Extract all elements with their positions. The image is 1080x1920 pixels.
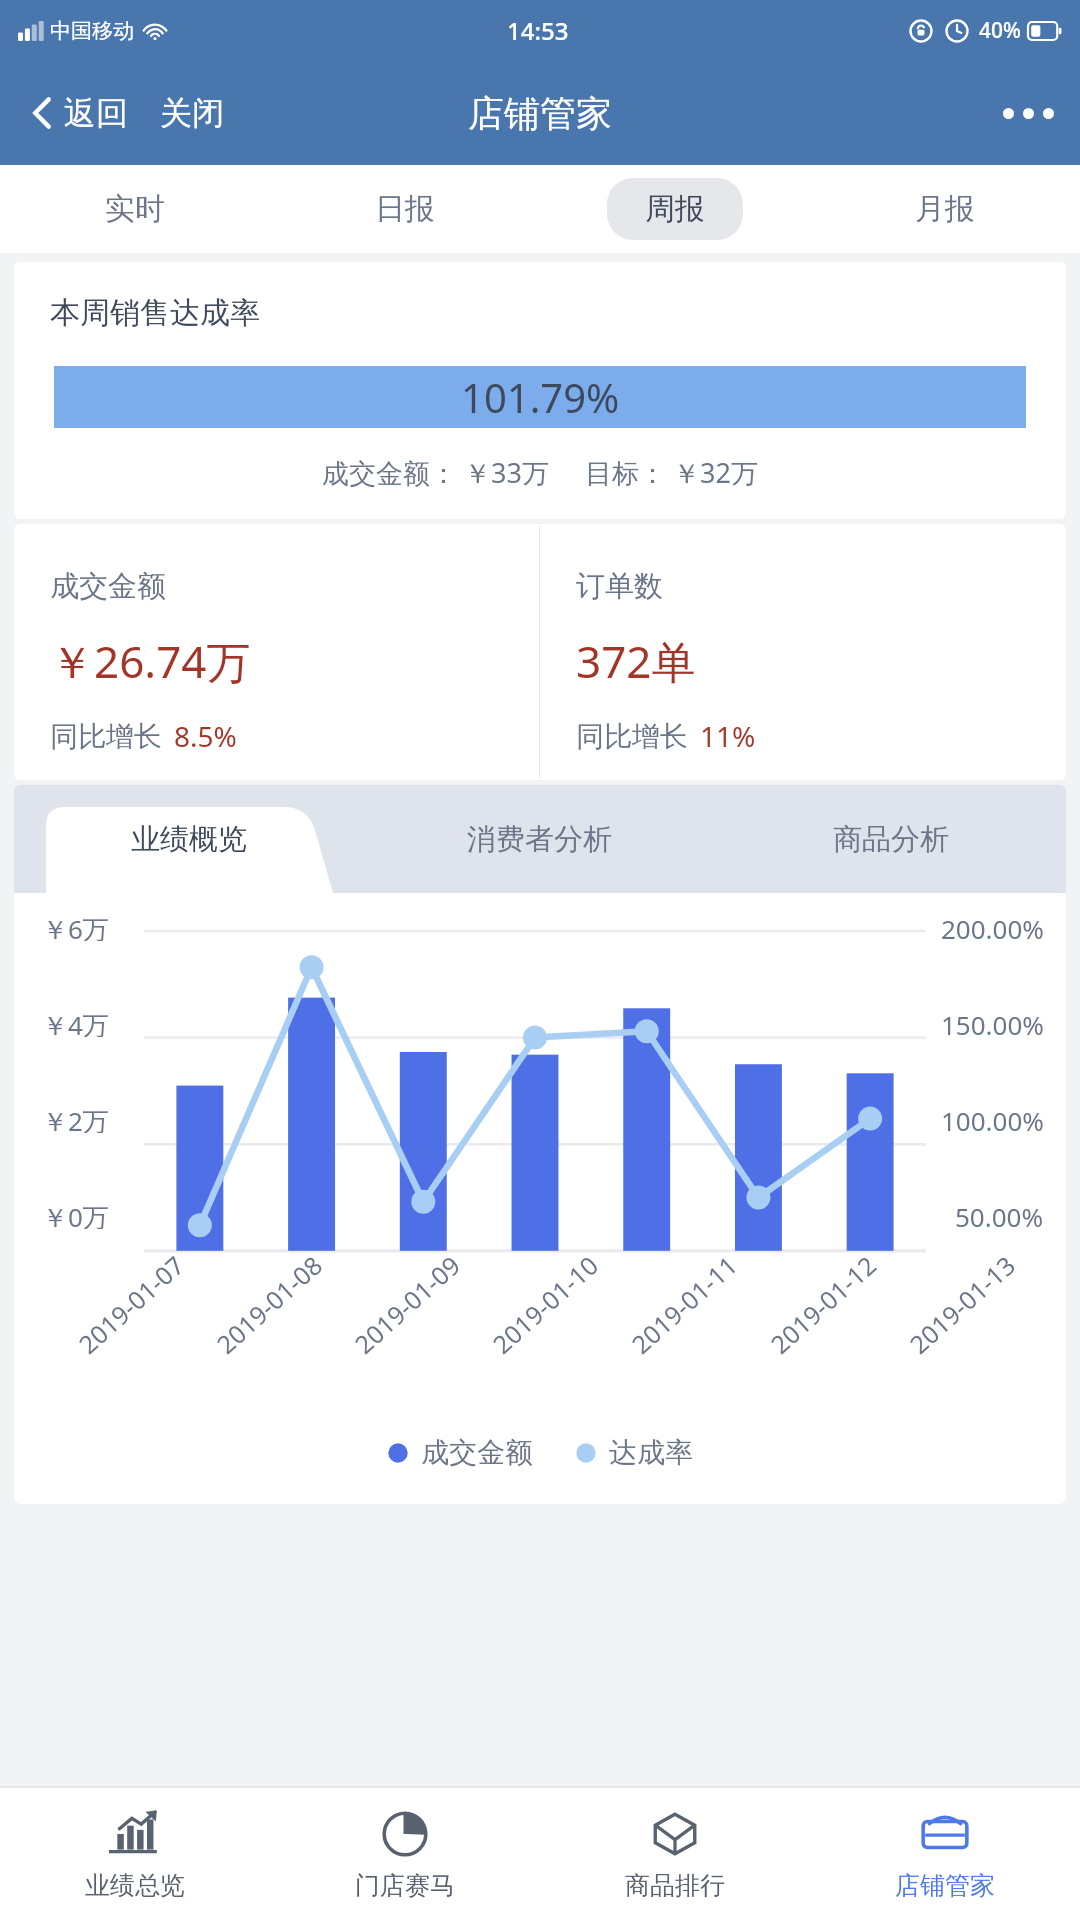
staticText: 8.5% [174, 717, 237, 755]
staticText: 业绩总览 [85, 1870, 185, 1901]
staticText: 2019-01-08 [209, 1248, 329, 1361]
staticText: 2019-01-09 [347, 1248, 467, 1361]
staticText: 关闭 [160, 93, 224, 133]
staticText: 目标： ￥32万 [585, 454, 758, 491]
staticText: 门店赛马 [355, 1870, 455, 1901]
button[interactable]: 月报 [810, 165, 1080, 253]
staticText: 成交金额： ￥33万 [322, 454, 549, 491]
button[interactable]: 关闭 [154, 83, 230, 143]
button[interactable]: 周报 [540, 165, 810, 253]
staticText: 150.00% [941, 1007, 1044, 1037]
staticText: ￥4万 [42, 1007, 109, 1037]
button[interactable]: 日报 [270, 165, 540, 253]
staticText: ￥0万 [42, 1199, 109, 1229]
staticText: 业绩概览 [131, 821, 247, 858]
button[interactable]: 门店赛马 [270, 1788, 540, 1920]
staticText: 商品分析 [833, 821, 949, 858]
staticText: 同比增长 [576, 719, 688, 754]
button[interactable]: 业绩概览 [14, 785, 364, 893]
button[interactable]: 商品分析 [715, 785, 1066, 893]
button[interactable]: More options [977, 84, 1080, 143]
staticText: 消费者分析 [467, 821, 612, 858]
staticText: ￥6万 [42, 911, 109, 941]
staticText: ￥2万 [42, 1103, 109, 1133]
staticText: 同比增长 [50, 719, 162, 754]
button[interactable]: 实时 [0, 165, 270, 253]
staticText: 2019-01-07 [71, 1248, 191, 1361]
staticText: 店铺管家 [895, 1870, 995, 1901]
staticText: 成交金额 [421, 1435, 533, 1470]
staticText: 100.00% [941, 1103, 1044, 1133]
staticText: 40% [979, 16, 1021, 45]
staticText: 11% [700, 717, 756, 755]
staticText: 月报 [915, 190, 975, 228]
button[interactable]: 业绩总览 [0, 1788, 270, 1920]
staticText: 2019-01-11 [624, 1248, 744, 1361]
button[interactable]: 店铺管家 [810, 1788, 1080, 1920]
staticText: 200.00% [941, 911, 1044, 941]
staticText: 店铺管家 [468, 91, 612, 136]
button[interactable]: 成交金额 [14, 524, 539, 780]
staticText: 101.79% [461, 370, 620, 424]
staticText: 372单 [576, 631, 696, 691]
staticText: 14:53 [507, 14, 569, 47]
button[interactable]: 返回 [26, 83, 132, 143]
button[interactable]: 订单数 [540, 524, 1066, 780]
staticText: 2019-01-12 [763, 1248, 883, 1361]
staticText: 2019-01-13 [902, 1248, 1022, 1361]
staticText: 商品排行 [625, 1870, 725, 1901]
staticText: 返回 [64, 93, 128, 133]
staticText: 周报 [645, 190, 705, 228]
staticText: 本周销售达成率 [50, 294, 260, 332]
button[interactable]: 消费者分析 [364, 785, 715, 893]
staticText: 实时 [105, 190, 165, 228]
staticText: 日报 [375, 190, 435, 228]
staticText: 2019-01-10 [485, 1248, 605, 1361]
staticText: 中国移动 [50, 18, 134, 44]
staticText: 50.00% [955, 1199, 1044, 1229]
staticText: ￥26.74万 [50, 631, 251, 691]
staticText: 达成率 [609, 1435, 693, 1470]
staticText: 订单数 [576, 568, 663, 605]
button[interactable]: 商品排行 [540, 1788, 810, 1920]
staticText: 成交金额 [50, 568, 166, 605]
